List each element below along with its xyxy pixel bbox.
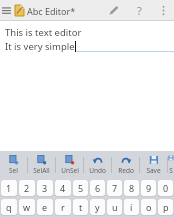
button[interactable]: Save xyxy=(140,152,167,178)
staticText: Sel xyxy=(9,166,18,175)
staticText: 1 xyxy=(6,182,12,194)
button[interactable]: S xyxy=(168,152,174,178)
button[interactable]: 3 xyxy=(37,180,53,196)
staticText: ? xyxy=(137,3,142,18)
staticText: Abc Editor* xyxy=(27,5,76,17)
button[interactable]: Menu xyxy=(0,0,13,21)
button[interactable]: y xyxy=(90,199,105,215)
staticText: 9 xyxy=(146,182,152,194)
button[interactable]: u xyxy=(107,199,122,215)
button[interactable]: 7 xyxy=(107,180,122,196)
button[interactable]: w xyxy=(19,199,35,215)
staticText: Undo xyxy=(89,166,106,175)
button[interactable]: 6 xyxy=(90,180,105,196)
staticText: w xyxy=(23,201,31,213)
button[interactable]: 8 xyxy=(124,180,139,196)
button[interactable]: More options xyxy=(152,0,174,21)
button[interactable]: 9 xyxy=(141,180,156,196)
staticText: 0 xyxy=(163,182,169,194)
staticText: SelAll xyxy=(33,166,50,175)
button[interactable]: Help xyxy=(126,0,152,21)
staticText: 2 xyxy=(24,182,30,194)
staticText: r xyxy=(61,201,65,213)
button[interactable]: Edit xyxy=(100,0,126,21)
button[interactable]: r xyxy=(55,199,71,215)
button[interactable]: 1 xyxy=(1,180,17,196)
staticText: u xyxy=(112,201,118,213)
staticText: q xyxy=(6,201,12,213)
staticText: This is text editor xyxy=(5,26,82,39)
button[interactable]: t xyxy=(73,199,88,215)
button[interactable]: 5 xyxy=(73,180,88,196)
button[interactable]: Redo xyxy=(112,152,139,178)
staticText: Save xyxy=(146,166,161,175)
staticText: 3 xyxy=(42,182,48,194)
button[interactable]: i xyxy=(124,199,139,215)
staticText: 8 xyxy=(129,182,135,194)
staticText: It is very simple xyxy=(5,40,75,53)
staticText: i xyxy=(130,201,133,213)
staticText: S xyxy=(169,166,173,175)
staticText: UnSel xyxy=(61,166,79,175)
button[interactable]: o xyxy=(141,199,156,215)
button[interactable]: q xyxy=(1,199,17,215)
staticText: 6 xyxy=(95,182,101,194)
button[interactable]: SelAll xyxy=(28,152,55,178)
staticText: Redo xyxy=(118,166,134,175)
staticText: 5 xyxy=(78,182,84,194)
staticText: o xyxy=(146,201,152,213)
button[interactable]: UnSel xyxy=(56,152,83,178)
staticText: t xyxy=(79,201,83,213)
staticText: p xyxy=(163,201,169,213)
button[interactable]: 0 xyxy=(158,180,173,196)
staticText: e xyxy=(42,201,48,213)
button[interactable]: 4 xyxy=(55,180,71,196)
staticText: 7 xyxy=(112,182,118,194)
button[interactable]: p xyxy=(158,199,173,215)
button[interactable]: Sel xyxy=(0,152,27,178)
button[interactable]: 2 xyxy=(19,180,35,196)
button[interactable]: This is text editor xyxy=(0,21,174,151)
button[interactable]: e xyxy=(37,199,53,215)
button[interactable]: Undo xyxy=(84,152,111,178)
staticText: 4 xyxy=(60,182,66,194)
staticText: y xyxy=(95,201,100,213)
